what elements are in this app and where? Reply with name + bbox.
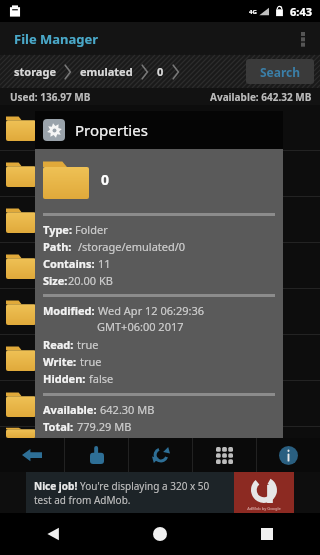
button[interactable]: Back <box>0 438 64 472</box>
staticText: test ad from AdMob. <box>34 493 131 507</box>
button[interactable] <box>0 151 320 196</box>
button[interactable]: 0 <box>149 60 172 83</box>
staticText: AdMob by Google <box>247 506 281 511</box>
button[interactable]: Info <box>257 438 320 472</box>
staticText: Properties <box>75 120 148 140</box>
staticText: emulated <box>80 64 133 79</box>
staticText: Size: <box>43 273 68 288</box>
staticText: Path: <box>43 239 78 254</box>
button[interactable]: Paste <box>65 438 128 472</box>
staticText: 0 <box>101 170 110 189</box>
button[interactable]: Search <box>246 59 314 84</box>
button[interactable]: Grid <box>193 438 256 472</box>
staticText: Write: <box>43 354 80 369</box>
staticText: Available: <box>43 402 100 417</box>
staticText: 779.29 MB <box>77 419 132 434</box>
staticText: 20.00 KB <box>68 273 113 288</box>
staticText: GMT+06:00 2017 <box>97 319 184 334</box>
button[interactable] <box>0 381 320 426</box>
button[interactable]: Refresh <box>129 438 192 472</box>
staticText: 11 <box>98 256 111 271</box>
button[interactable] <box>0 197 320 242</box>
staticText: Used: 136.97 MB <box>10 90 91 104</box>
button[interactable] <box>0 289 320 334</box>
button[interactable] <box>0 427 320 438</box>
staticText: Hidden: <box>43 371 89 386</box>
button[interactable]: storage <box>6 60 64 83</box>
button[interactable]: Recents <box>213 513 320 555</box>
staticText: Wed Apr 12 06:29:36 <box>98 303 205 318</box>
button[interactable]: Home <box>106 513 213 555</box>
staticText: true <box>80 354 102 369</box>
staticText: You're displaying a 320 x 50 <box>80 479 210 493</box>
button[interactable]: emulated <box>72 60 141 83</box>
staticText: Contains: <box>43 256 98 271</box>
staticText: File Manager <box>14 30 99 48</box>
staticText: Available: 642.32 MB <box>210 90 312 104</box>
button[interactable] <box>0 335 320 380</box>
staticText: storage <box>14 64 56 79</box>
staticText: 6:43 <box>290 4 312 19</box>
staticText: Modified: <box>43 303 98 318</box>
staticText: false <box>89 371 114 386</box>
staticText: Folder <box>75 222 108 237</box>
staticText: 4G <box>249 8 257 16</box>
button[interactable]: Back <box>0 513 106 555</box>
staticText: 0 <box>157 64 164 79</box>
staticText: /storage/emulated/0 <box>78 239 186 254</box>
button[interactable] <box>0 243 320 288</box>
staticText: Nice job! <box>34 479 80 493</box>
staticText: 642.30 MB <box>100 402 155 417</box>
staticText: Search <box>260 64 301 80</box>
button[interactable]: More options <box>286 22 320 55</box>
staticText: Total: <box>43 419 77 434</box>
staticText: Read: <box>43 337 77 352</box>
staticText: Type: <box>43 222 75 237</box>
staticText: true <box>77 337 99 352</box>
button[interactable] <box>0 105 320 150</box>
